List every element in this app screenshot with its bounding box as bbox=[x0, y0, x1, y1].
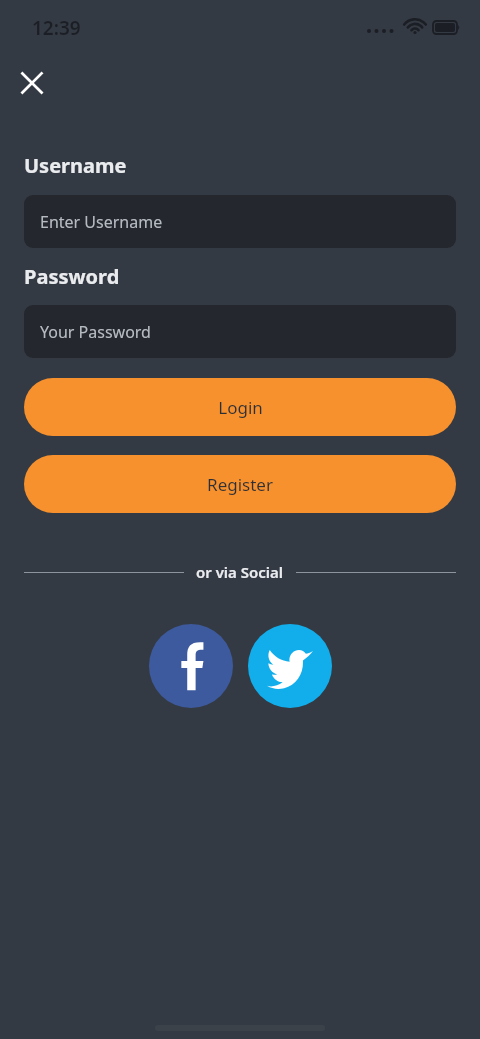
staticText: or via Social bbox=[196, 562, 284, 582]
staticText: Enter Username bbox=[40, 211, 163, 233]
button[interactable]: Register bbox=[24, 455, 456, 513]
button[interactable]: Sign in with Twitter bbox=[248, 624, 332, 708]
button[interactable]: Login bbox=[24, 378, 456, 436]
button[interactable]: Enter Username bbox=[24, 195, 456, 248]
staticText: 12:39 bbox=[32, 15, 81, 41]
staticText: Username bbox=[24, 152, 127, 179]
staticText: Password bbox=[24, 263, 120, 290]
staticText: Your Password bbox=[40, 321, 151, 343]
staticText: Register bbox=[207, 473, 273, 496]
staticText: Login bbox=[218, 396, 263, 419]
button[interactable]: Sign in with Facebook bbox=[149, 624, 233, 708]
button[interactable]: Close bbox=[14, 65, 50, 101]
button[interactable]: Your Password bbox=[24, 305, 456, 358]
